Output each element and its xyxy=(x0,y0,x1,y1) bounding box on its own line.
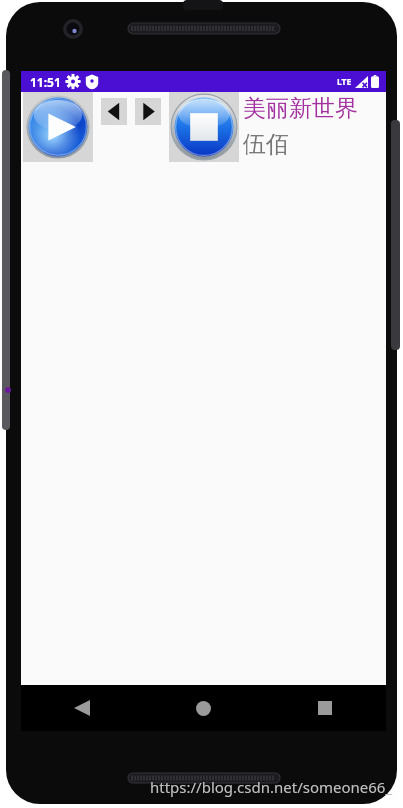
staticText: 伍佰 xyxy=(243,130,289,159)
button[interactable]: Recents xyxy=(264,685,386,731)
button[interactable]: Play xyxy=(23,92,93,162)
staticText: 美丽新世界 xyxy=(243,94,358,123)
staticText: 11:51 xyxy=(30,74,61,90)
staticText: LTE xyxy=(337,76,352,88)
button[interactable]: Next xyxy=(135,98,161,125)
staticText: https://blog.csdn.net/someone66_ xyxy=(150,777,393,797)
button[interactable]: Stop xyxy=(169,92,239,162)
button[interactable]: Back xyxy=(21,685,142,731)
button[interactable]: Previous xyxy=(101,98,127,125)
button[interactable]: Home xyxy=(142,685,264,731)
